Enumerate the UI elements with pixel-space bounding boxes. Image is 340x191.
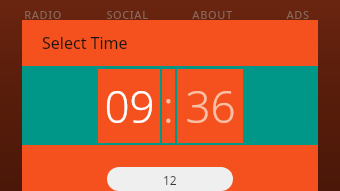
button[interactable]: 36 [177,69,243,143]
button[interactable]: RADIO [0,0,85,22]
button[interactable]: Clock face hour dial [107,167,233,191]
staticText: RADIO [24,7,62,22]
staticText: SOCIAL [106,7,149,22]
staticText: 09 [104,76,155,136]
button[interactable]: 09 [98,69,160,143]
staticText: : [163,76,174,136]
staticText: ADS [286,7,310,22]
button[interactable]: ADS [255,0,340,22]
button[interactable]: ABOUT [170,0,255,22]
staticText: ABOUT [192,7,233,22]
staticText: 36 [185,76,236,136]
staticText: 12 [163,172,177,188]
button[interactable]: SOCIAL [85,0,170,22]
staticText: Select Time [42,32,128,54]
